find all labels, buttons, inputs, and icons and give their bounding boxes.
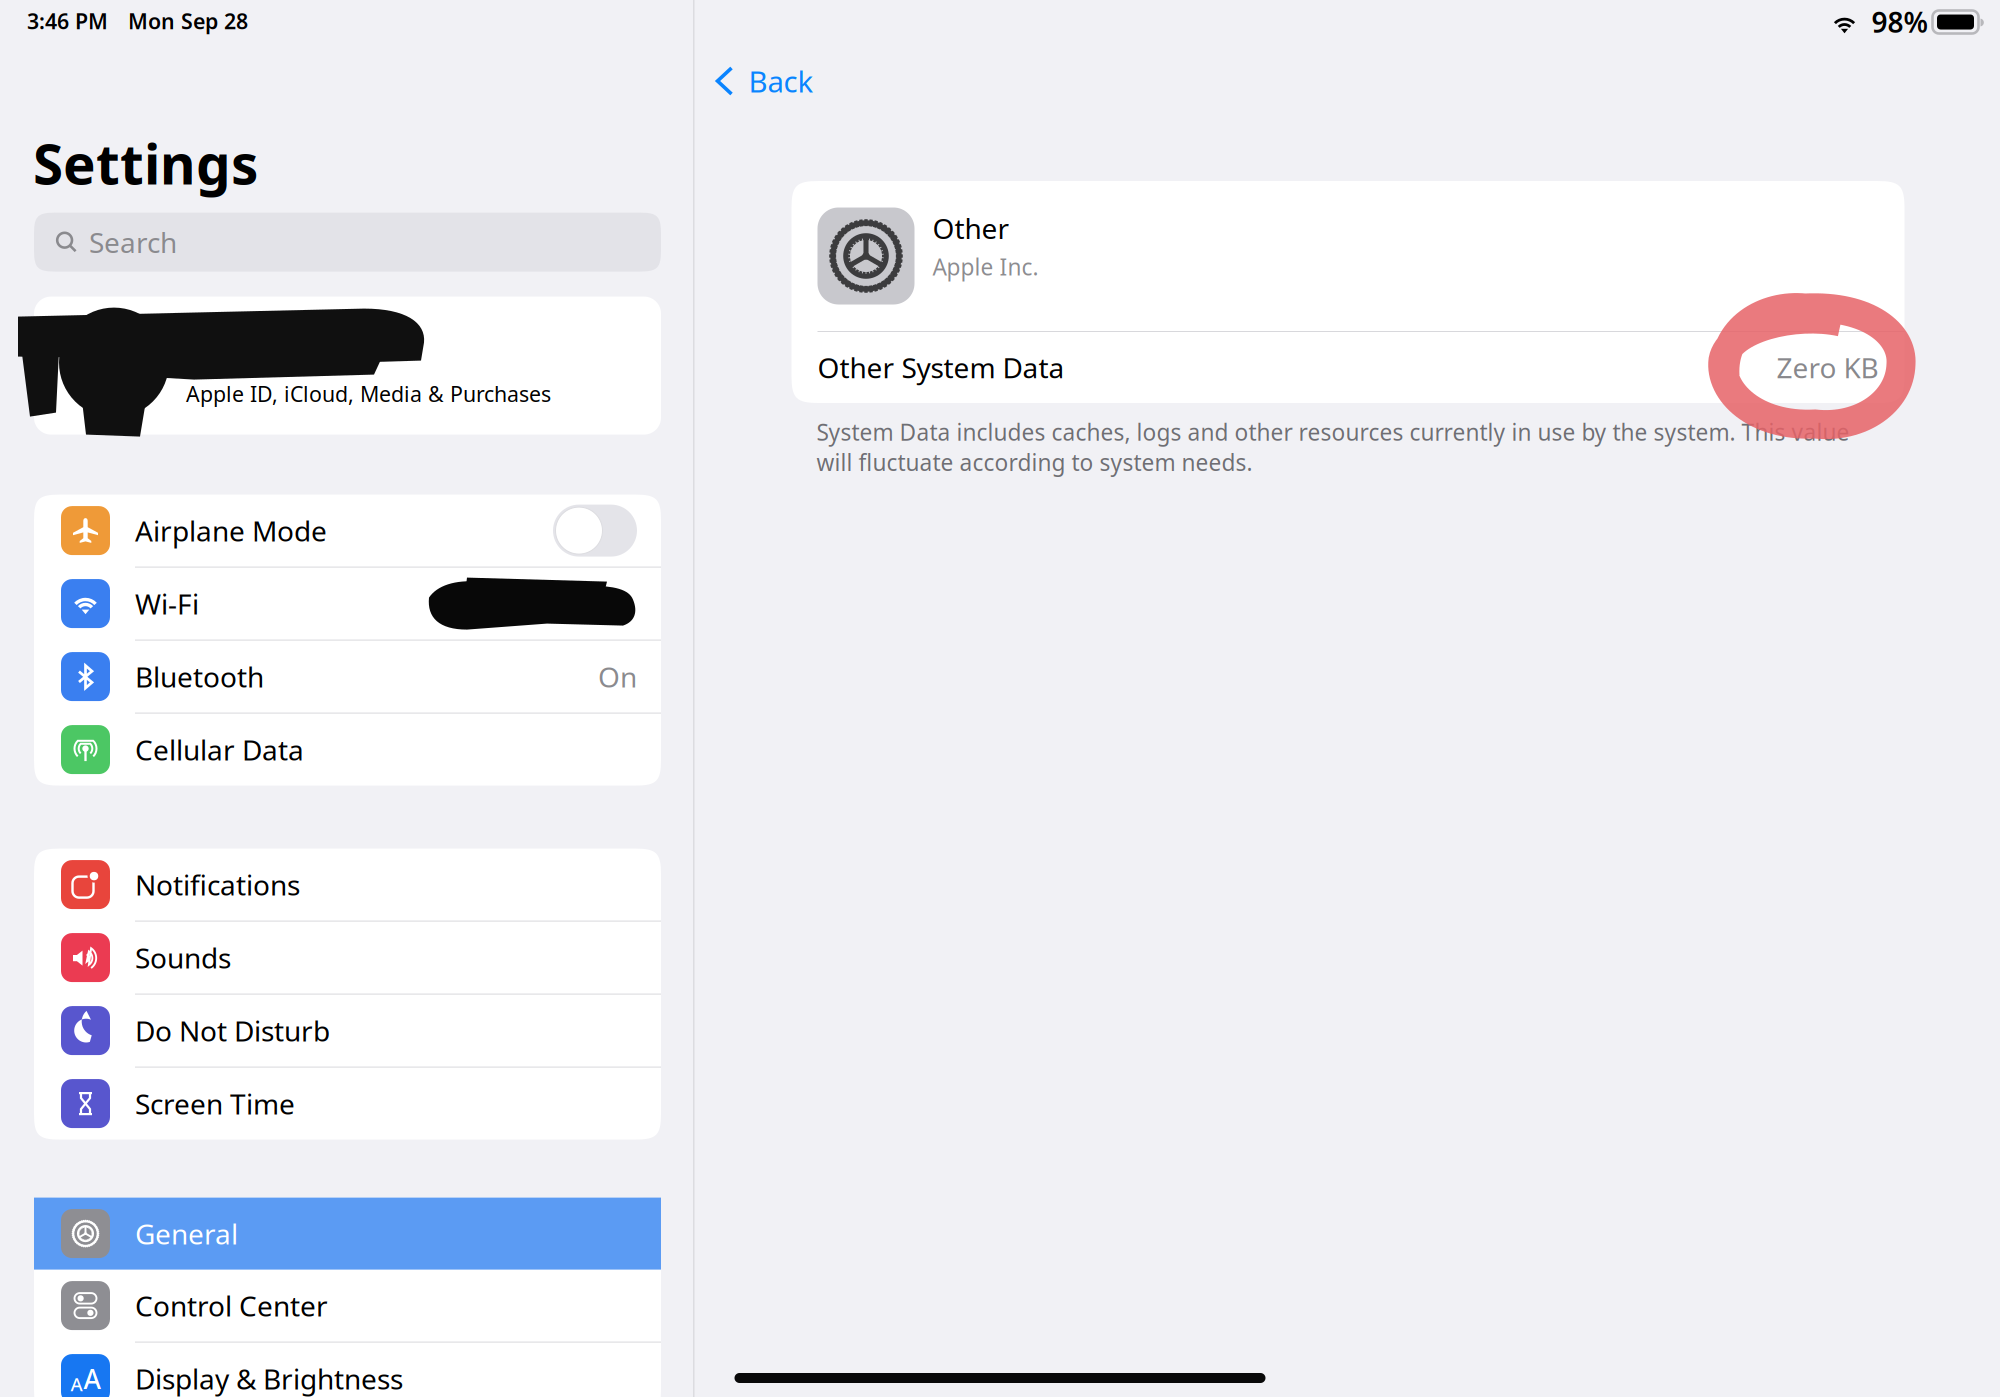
staticText: Do Not Disturb [135, 1012, 330, 1049]
button[interactable]: Airplane Mode [34, 495, 661, 567]
button[interactable]: Cellular Data [34, 714, 661, 786]
button[interactable]: Back [694, 56, 2000, 106]
staticText: On [598, 658, 637, 695]
button[interactable]: A [34, 1343, 661, 1397]
staticText: Search [89, 223, 177, 261]
button[interactable]: Bluetooth [34, 641, 661, 713]
staticText: Notifications [135, 866, 300, 903]
staticText: Mon Sep 28 [128, 7, 248, 35]
staticText: Control Center [135, 1287, 328, 1324]
staticText: Sounds [135, 939, 231, 976]
button[interactable]: Wi-Fi [34, 568, 661, 640]
staticText: Cellular Data [135, 731, 304, 768]
button[interactable]: General [34, 1198, 661, 1270]
staticText: Settings [33, 127, 258, 200]
staticText: System Data includes caches, logs and ot… [816, 417, 1849, 477]
staticText: 3:46 PM [27, 7, 108, 35]
staticText: Airplane Mode [135, 512, 327, 549]
button[interactable]: Notifications [34, 849, 661, 921]
button[interactable]: Do Not Disturb [34, 995, 661, 1067]
staticText: 98% [1871, 3, 1928, 41]
staticText: Other [932, 209, 1009, 247]
button[interactable]: Sounds [34, 922, 661, 994]
staticText: Apple ID, iCloud, Media & Purchases [186, 380, 551, 408]
staticText: Wi-Fi [135, 585, 199, 622]
staticText: Bluetooth [135, 658, 264, 695]
staticText: A [83, 1361, 100, 1396]
button[interactable]: Apple ID, iCloud, Media & Purchases [0, 272, 661, 435]
staticText: Zero KB [1776, 349, 1878, 386]
button[interactable]: Search [0, 200, 661, 272]
staticText: A [70, 1371, 82, 1396]
staticText: Back [748, 61, 813, 100]
staticText: General [135, 1215, 238, 1252]
staticText: Other System Data [817, 349, 1064, 386]
staticText: Screen Time [135, 1085, 295, 1122]
staticText: Display & Brightness [135, 1360, 403, 1397]
button[interactable]: Control Center [34, 1270, 661, 1342]
staticText: Apple Inc. [932, 252, 1038, 282]
button[interactable]: Screen Time [34, 1068, 661, 1140]
